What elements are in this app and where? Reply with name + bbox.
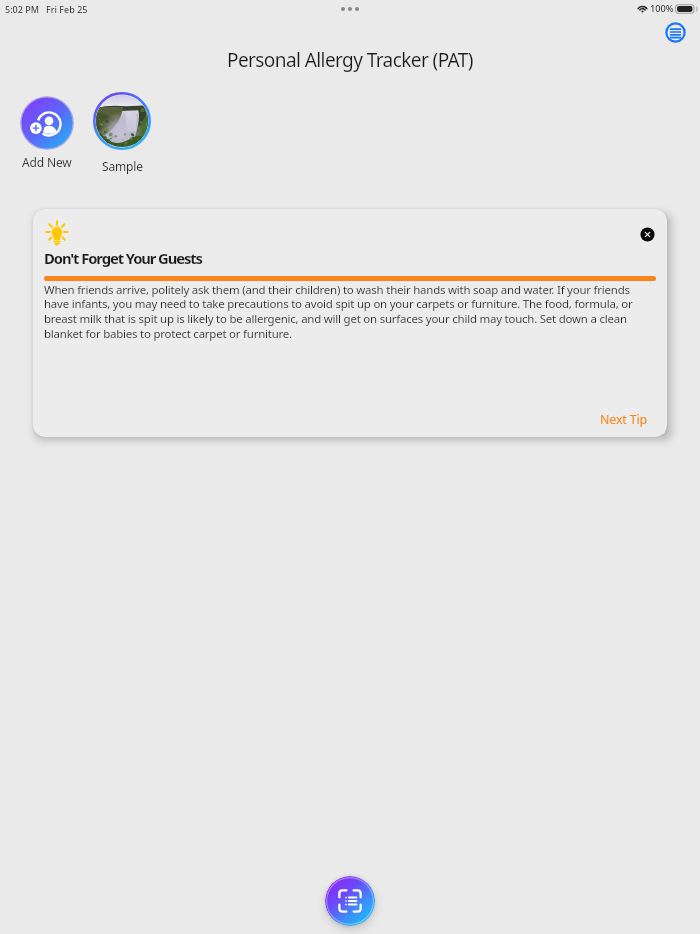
staticText: Next Tip xyxy=(600,411,647,428)
staticText: Personal Allergy Tracker (PAT) xyxy=(227,47,473,73)
staticText: Sample xyxy=(102,158,143,174)
staticText: Don't Forget Your Guests xyxy=(44,248,202,268)
button[interactable]: Add New xyxy=(13,96,80,170)
staticText: Add New xyxy=(22,154,72,170)
staticText: When friends arrive, politely ask them (… xyxy=(44,282,656,342)
button[interactable]: Next Tip xyxy=(596,408,651,431)
button[interactable]: Scan xyxy=(325,876,375,926)
button[interactable]: Menu xyxy=(664,21,687,44)
button[interactable]: Close xyxy=(637,224,658,245)
staticText: Fri Feb 25 xyxy=(46,3,88,15)
staticText: 5:02 PM xyxy=(5,3,39,15)
staticText: 100% xyxy=(650,2,674,15)
button[interactable]: Sample xyxy=(80,96,164,174)
